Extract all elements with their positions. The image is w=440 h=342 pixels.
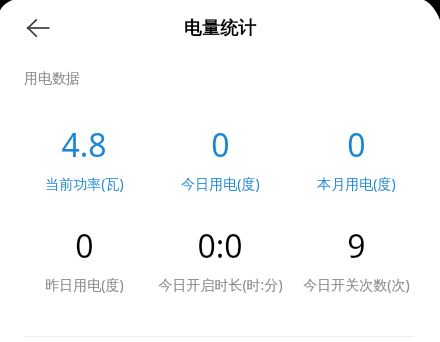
staticText: 今日用电(度) <box>181 174 260 193</box>
staticText: 昨日用电(度) <box>45 275 124 294</box>
staticText: 0 <box>211 123 230 167</box>
staticText: 今日开关次数(次) <box>303 275 410 294</box>
staticText: 0:0 <box>197 224 243 268</box>
staticText: 0 <box>75 224 94 268</box>
staticText: 今日开启时长(时:分) <box>158 275 283 294</box>
staticText: 0 <box>347 123 366 167</box>
staticText: 9 <box>347 224 366 268</box>
button[interactable]: Back <box>16 6 60 50</box>
staticText: 当前功率(瓦) <box>45 174 124 193</box>
staticText: 4.8 <box>61 123 107 167</box>
staticText: 本月用电(度) <box>317 174 396 193</box>
staticText: 电量统计 <box>184 17 256 40</box>
staticText: 用电数据 <box>24 70 80 88</box>
